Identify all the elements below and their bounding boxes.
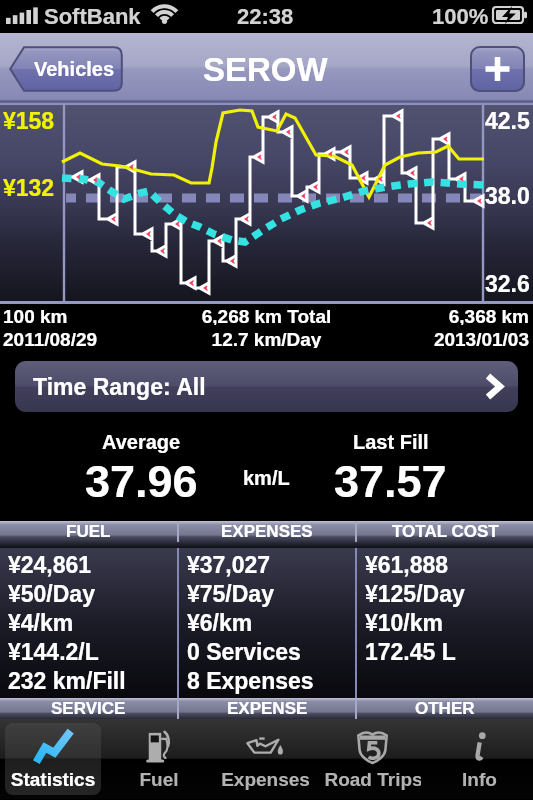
staticText: EXPENSES <box>221 522 313 541</box>
staticText: Vehicles <box>34 58 115 80</box>
staticText: SERVICE <box>51 699 126 718</box>
staticText: 6,368 km <box>360 306 529 325</box>
staticText: Fuel <box>111 769 207 790</box>
button[interactable]: Add entry <box>470 46 525 92</box>
button[interactable]: Info <box>431 723 528 795</box>
staticText: Statistics <box>5 769 101 790</box>
staticText: 12.7 km/Day <box>173 329 360 348</box>
staticText: 6,268 km Total <box>173 306 360 325</box>
staticText: 100 km <box>3 306 173 325</box>
staticText: 8 Expenses <box>187 668 314 694</box>
staticText: OTHER <box>415 699 475 718</box>
staticText: 37.96 <box>85 456 198 506</box>
staticText: EXPENSE <box>227 699 308 718</box>
staticText: ¥125/Day <box>365 581 465 607</box>
staticText: SEROW <box>203 51 328 88</box>
staticText: ¥61,888 <box>365 552 449 578</box>
staticText: 38.0 <box>485 183 530 209</box>
staticText: ¥144.2/L <box>8 639 99 665</box>
button[interactable]: Fuel <box>111 723 207 795</box>
button[interactable]: Vehicles <box>9 46 123 92</box>
staticText: ¥50/Day <box>8 581 95 607</box>
staticText: ¥6/km <box>187 610 253 636</box>
staticText: ¥158 <box>3 108 55 134</box>
staticText: 2011/08/29 <box>3 329 173 348</box>
staticText: 2013/01/03 <box>360 329 529 348</box>
staticText: ¥132 <box>3 175 55 201</box>
staticText: Info <box>431 769 528 790</box>
staticText: ¥75/Day <box>187 581 274 607</box>
button[interactable]: Time Range: All <box>15 361 518 412</box>
button[interactable]: Expenses <box>217 723 314 795</box>
staticText: 32.6 <box>485 271 530 297</box>
staticText: 0 Services <box>187 639 301 665</box>
staticText: Expenses <box>217 769 314 790</box>
staticText: ¥10/km <box>365 610 444 636</box>
staticText: Average <box>102 431 181 453</box>
staticText: Road Trips <box>324 769 421 790</box>
staticText: 232 km/Fill <box>8 668 126 694</box>
staticText: ¥4/km <box>8 610 74 636</box>
staticText: 37.57 <box>334 456 447 506</box>
staticText: 172.45 L <box>365 639 456 665</box>
staticText: ¥37,027 <box>187 552 271 578</box>
staticText: SoftBank <box>44 4 141 29</box>
staticText: km/L <box>243 467 290 489</box>
staticText: ¥24,861 <box>8 552 92 578</box>
staticText: 100% <box>432 4 489 29</box>
staticText: 22:38 <box>237 4 294 29</box>
staticText: Time Range: All <box>33 374 206 400</box>
staticText: FUEL <box>66 522 111 541</box>
staticText: Last Fill <box>353 431 429 453</box>
button[interactable]: Statistics <box>5 723 101 795</box>
staticText: TOTAL COST <box>392 522 499 541</box>
button[interactable]: Road Trips <box>324 723 421 795</box>
staticText: 42.5 <box>485 108 530 134</box>
